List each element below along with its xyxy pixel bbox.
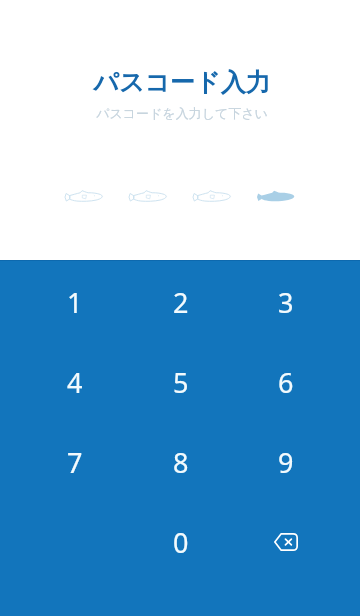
button[interactable]: 8 — [128, 422, 233, 502]
staticText: 5 — [173, 364, 189, 401]
button[interactable]: 4 — [22, 342, 128, 422]
staticText: 6 — [278, 364, 294, 401]
button[interactable]: 1 — [22, 262, 128, 342]
button[interactable]: 0 — [128, 502, 233, 582]
staticText: 9 — [278, 444, 294, 481]
button[interactable]: 3 — [233, 262, 338, 342]
button[interactable]: 5 — [128, 342, 233, 422]
button[interactable]: Delete — [233, 502, 338, 582]
staticText: 7 — [67, 444, 83, 481]
button[interactable]: 2 — [128, 262, 233, 342]
staticText: パスコード入力 — [4, 67, 360, 98]
staticText: 1 — [67, 284, 83, 321]
staticText: 3 — [278, 284, 294, 321]
button[interactable]: 6 — [233, 342, 338, 422]
button[interactable]: 9 — [233, 422, 338, 502]
staticText: 8 — [173, 444, 189, 481]
staticText: 0 — [173, 524, 189, 561]
staticText: パスコードを入力して下さい — [4, 105, 360, 121]
button[interactable]: 7 — [22, 422, 128, 502]
staticText: 2 — [173, 284, 189, 321]
staticText: 4 — [67, 364, 83, 401]
